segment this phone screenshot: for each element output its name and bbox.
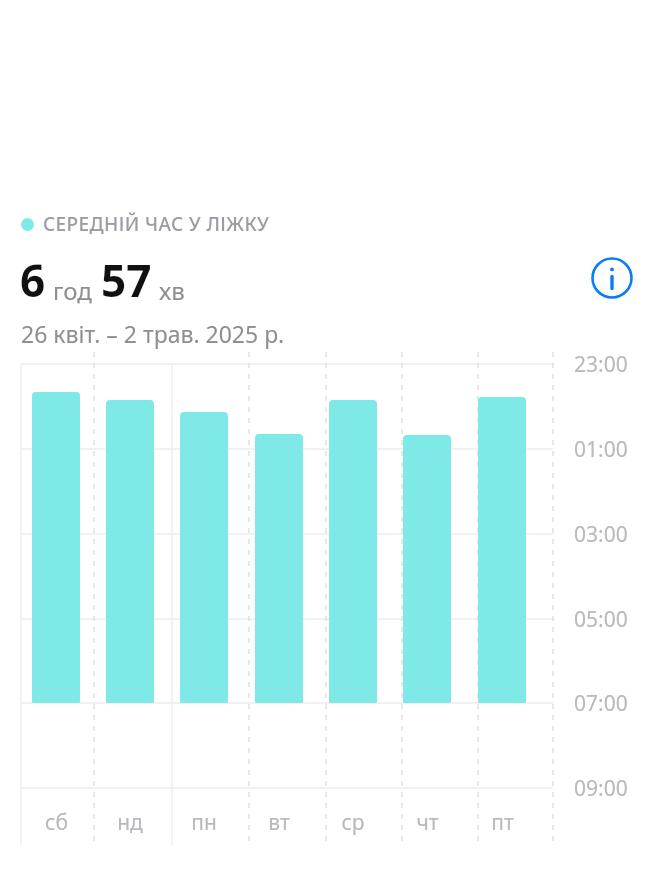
staticText: 01:00 xyxy=(574,435,628,464)
staticText: ср xyxy=(341,808,365,837)
staticText: чт xyxy=(416,808,439,837)
staticText: нд xyxy=(117,808,143,837)
staticText: пн xyxy=(191,808,217,837)
button[interactable]: Інформація xyxy=(590,256,634,300)
staticText: 07:00 xyxy=(574,689,628,718)
staticText: пт xyxy=(491,808,514,837)
staticText: 26 квіт. – 2 трав. 2025 р. xyxy=(21,318,285,349)
staticText: сб xyxy=(45,808,68,837)
staticText: хв xyxy=(159,274,185,307)
staticText: вт xyxy=(268,808,290,837)
staticText: СЕРЕДНІЙ ЧАС У ЛІЖКУ xyxy=(43,211,270,237)
staticText: 6 xyxy=(20,250,46,310)
button[interactable] xyxy=(0,0,660,880)
staticText: год xyxy=(53,274,92,307)
staticText: 57 xyxy=(101,250,152,310)
staticText: 23:00 xyxy=(574,350,628,379)
staticText: 03:00 xyxy=(574,520,628,549)
staticText: 09:00 xyxy=(574,774,628,803)
staticText: 05:00 xyxy=(574,605,628,634)
